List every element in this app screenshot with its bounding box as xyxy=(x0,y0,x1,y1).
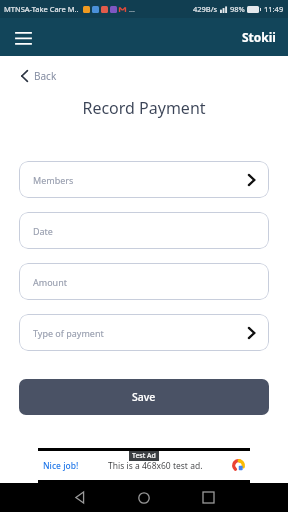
staticText: Stokii xyxy=(242,29,276,45)
staticText: MTNSA-Take Care M.. xyxy=(4,4,79,14)
staticText: Date xyxy=(33,225,53,237)
button[interactable]: Save xyxy=(19,379,269,415)
button[interactable]: Type of payment xyxy=(19,314,269,351)
staticText: Members xyxy=(33,174,74,186)
staticText: 98% xyxy=(230,4,245,14)
button[interactable]: Date xyxy=(19,212,269,249)
button[interactable]: Recent apps xyxy=(186,483,230,512)
button[interactable]: Advertisement xyxy=(38,448,250,483)
button[interactable]: Back xyxy=(58,483,102,512)
button[interactable]: Home xyxy=(122,483,166,512)
button[interactable]: Back xyxy=(18,66,60,86)
staticText: Save xyxy=(132,390,156,404)
staticText: … xyxy=(129,4,135,14)
staticText: Nice job! xyxy=(43,460,79,472)
staticText: 429B/s xyxy=(193,4,218,14)
button[interactable]: Amount xyxy=(19,263,269,300)
staticText: This is a 468x60 test ad. xyxy=(108,460,203,472)
button[interactable]: Members xyxy=(19,161,269,198)
staticText: Record Payment xyxy=(0,97,288,119)
staticText: Amount xyxy=(33,276,67,288)
staticText: Type of payment xyxy=(33,327,104,339)
button[interactable]: Open navigation menu xyxy=(10,24,36,50)
staticText: Back xyxy=(34,69,57,83)
staticText: Test Ad xyxy=(132,451,156,461)
staticText: 11:49 xyxy=(264,4,284,14)
